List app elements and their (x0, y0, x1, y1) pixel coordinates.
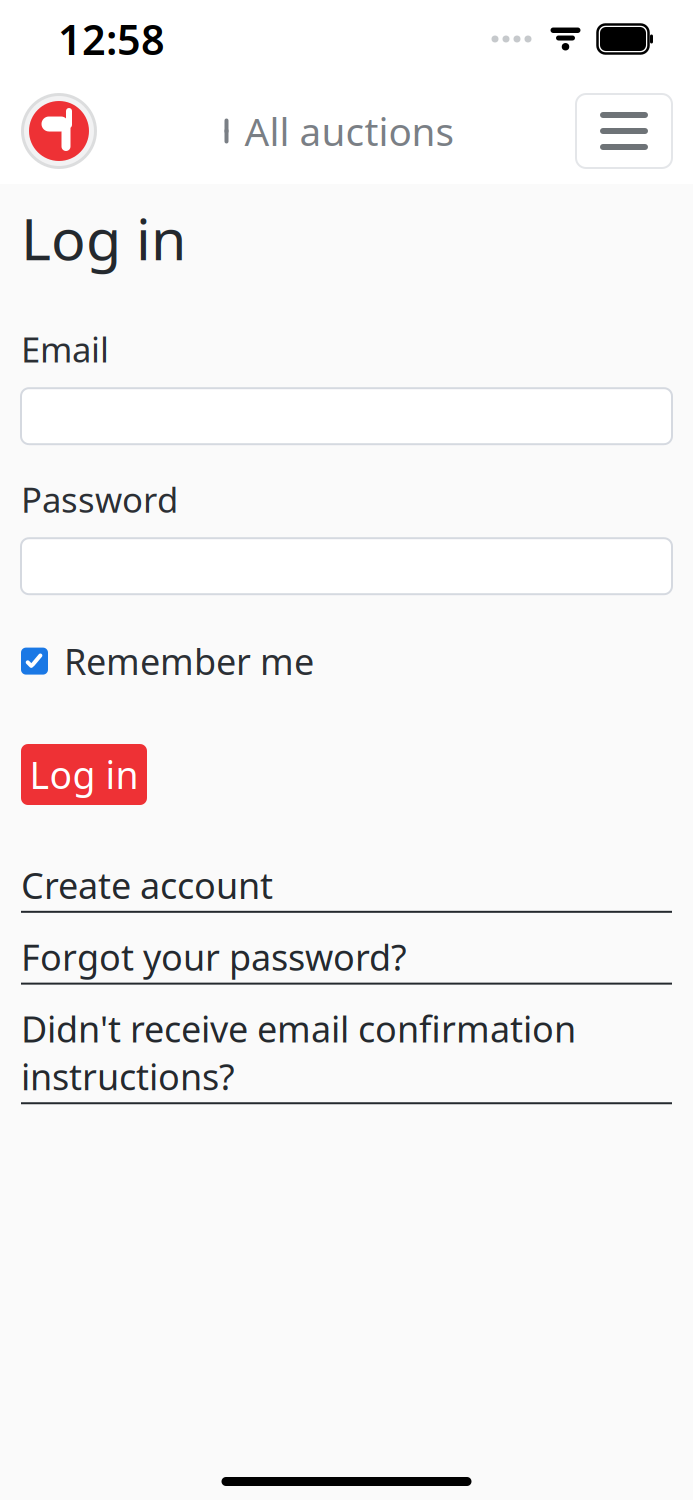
button[interactable]: Remember me (21, 631, 314, 691)
button[interactable]: Log in (21, 744, 147, 805)
button[interactable]: Create account (21, 851, 672, 923)
staticText: Email (21, 326, 109, 372)
staticText: Didn't receive email confirmation instru… (21, 1005, 576, 1100)
staticText: All auctions (244, 105, 454, 157)
staticText: 12:58 (58, 12, 165, 66)
button[interactable]: All auctions (212, 95, 460, 167)
staticText: Forgot your password? (21, 933, 407, 981)
staticText: Create account (21, 861, 273, 909)
staticText: Log in (29, 750, 138, 799)
button[interactable]: Home (21, 93, 97, 169)
staticText: Log in (21, 200, 186, 276)
staticText: Password (21, 476, 178, 522)
staticText: Remember me (64, 637, 314, 685)
button[interactable]: Forgot your password? (21, 923, 672, 995)
button[interactable]: Menu (576, 94, 672, 168)
button[interactable]: Didn't receive email confirmation instru… (21, 995, 672, 1114)
